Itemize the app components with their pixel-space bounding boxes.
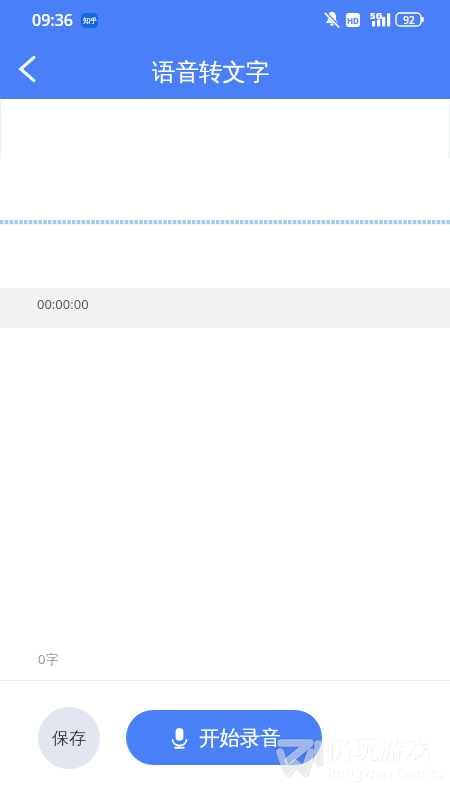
staticText: 语音转文字 (152, 57, 270, 87)
staticText: Rengwan Games (327, 762, 446, 782)
staticText: 09:36 (32, 9, 73, 31)
staticText: 知乎 (83, 16, 97, 25)
button[interactable]: 保存 (38, 707, 100, 769)
staticText: 开始录音 (199, 725, 281, 751)
staticText: 5G (370, 9, 383, 22)
staticText: 92 (403, 13, 415, 26)
staticText: HD (347, 15, 359, 26)
staticText: Rengwan Games (326, 761, 445, 781)
staticText: 仍玩游戏 (327, 733, 431, 766)
staticText: 0字 (38, 650, 59, 668)
staticText: 00:00:00 (37, 295, 89, 313)
staticText: 保存 (52, 728, 86, 749)
staticText: 仍玩游戏 (326, 732, 430, 765)
button[interactable]: Back (5, 47, 49, 91)
button[interactable]: 开始录音 (126, 710, 322, 765)
